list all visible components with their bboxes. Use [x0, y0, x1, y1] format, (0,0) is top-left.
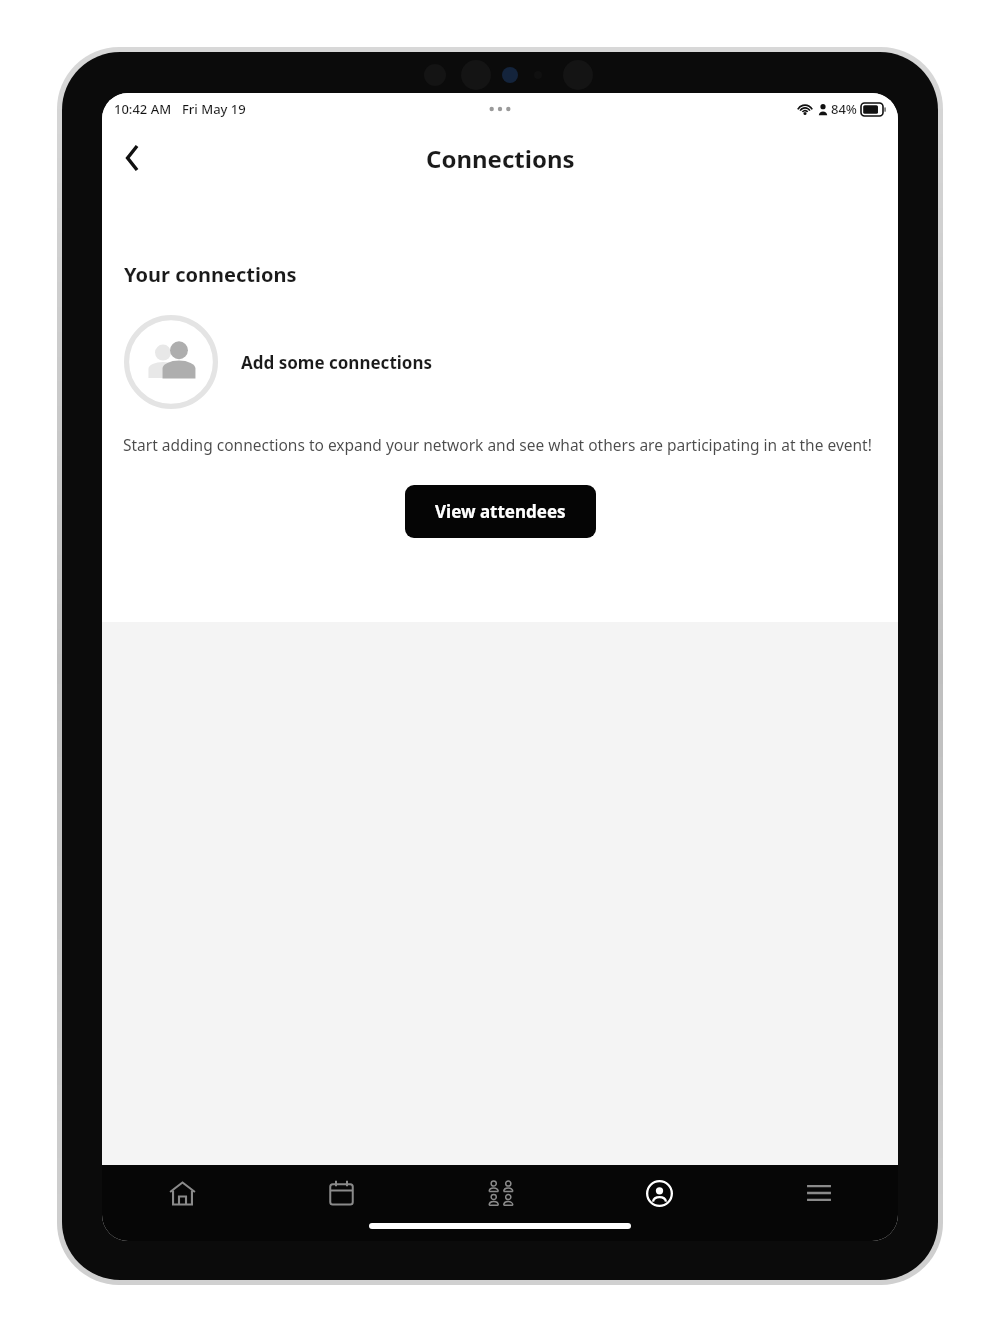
button[interactable]: Calendar	[262, 1165, 421, 1221]
staticText: Connections	[426, 142, 575, 175]
button[interactable]: Menu	[739, 1165, 898, 1221]
staticText: Add some connections	[241, 351, 433, 374]
button[interactable]: View attendees	[405, 485, 596, 538]
staticText: View attendees	[435, 500, 566, 523]
button[interactable]: Attendees	[421, 1165, 580, 1221]
staticText: Fri May 19	[182, 100, 246, 118]
staticText: Your connections	[124, 261, 297, 288]
staticText: 84%	[831, 100, 857, 118]
button[interactable]: Add some connections	[124, 315, 898, 409]
staticText: 10:42 AM	[114, 100, 172, 118]
button[interactable]: Back	[110, 136, 154, 180]
staticText: Start adding connections to expand your …	[123, 434, 872, 455]
button[interactable]: Profile	[580, 1165, 739, 1221]
button[interactable]: Home	[102, 1165, 262, 1221]
